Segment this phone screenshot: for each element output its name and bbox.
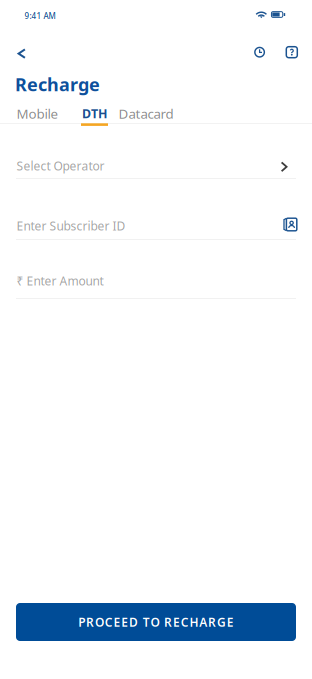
staticText: Datacard xyxy=(118,105,173,122)
button[interactable]: Enter Subscriber ID xyxy=(16,218,296,250)
staticText: Recharge xyxy=(15,72,100,96)
staticText: PROCEED TO RECHARGE xyxy=(78,614,234,630)
staticText: 9:41 AM xyxy=(24,10,55,21)
button[interactable]: Back xyxy=(6,38,38,70)
staticText: Mobile xyxy=(16,105,58,122)
button[interactable]: Pick from contacts xyxy=(276,210,304,238)
button[interactable]: PROCEED TO RECHARGE xyxy=(16,603,296,641)
button[interactable]: DTH xyxy=(72,99,117,127)
button[interactable]: Recharge history xyxy=(245,37,275,67)
button[interactable]: Mobile xyxy=(8,99,67,127)
button[interactable]: ₹ Enter Amount xyxy=(16,273,296,305)
button[interactable]: Select Operator xyxy=(16,158,296,190)
button[interactable]: Datacard xyxy=(111,99,181,127)
staticText: Enter Subscriber ID xyxy=(16,218,125,234)
staticText: ₹ Enter Amount xyxy=(16,273,103,289)
staticText: Select Operator xyxy=(16,158,104,174)
button[interactable]: Help xyxy=(277,37,307,67)
staticText: DTH xyxy=(82,105,107,122)
